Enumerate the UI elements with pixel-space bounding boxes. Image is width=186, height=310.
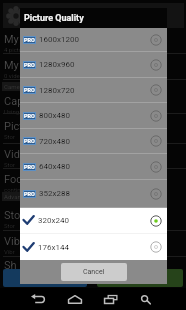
staticText: 176x144: [38, 243, 69, 252]
button[interactable]: Storage: [4, 209, 186, 229]
staticText: Using camera: [4, 108, 41, 115]
staticText: Video quality: [4, 148, 68, 161]
button[interactable]: Home: [57, 288, 93, 310]
button[interactable]: Search: [128, 288, 164, 310]
staticText: Cancel: [83, 268, 105, 276]
button[interactable]: Record: [97, 269, 183, 287]
staticText: 1280x960: [39, 60, 75, 69]
staticText: 800x480: [39, 111, 70, 120]
staticText: 1600x1200: [39, 35, 79, 44]
staticText: Camera: [4, 83, 25, 90]
staticText: Storage: [4, 209, 42, 222]
button[interactable]: 176x144: [20, 234, 167, 260]
button[interactable]: PRO: [20, 180, 167, 208]
button[interactable]: Cancel: [61, 263, 127, 281]
button[interactable]: Capture mode: [4, 95, 186, 115]
button[interactable]: Back: [20, 288, 56, 310]
staticText: 320x240: [38, 216, 69, 225]
button[interactable]: PRO: [20, 78, 167, 103]
staticText: Vibr: [4, 248, 15, 255]
staticText: My pictures: [4, 33, 61, 46]
staticText: PRO: [24, 87, 35, 93]
staticText: 720x480: [39, 137, 70, 146]
staticText: PRO: [24, 138, 35, 144]
button[interactable]: PRO: [20, 154, 167, 180]
button[interactable]: Focus mode: [4, 173, 186, 193]
staticText: PRO: [24, 164, 35, 170]
staticText: Stor: [4, 133, 15, 140]
staticText: PRO: [24, 62, 35, 68]
button[interactable]: 320x240: [20, 208, 167, 234]
staticText: Capture mode: [4, 95, 74, 108]
button[interactable]: Vibrate: [4, 235, 186, 255]
staticText: PRO: [24, 191, 35, 197]
staticText: Vibrate: [4, 235, 39, 248]
staticText: My videos: [4, 59, 54, 72]
staticText: 352x288: [39, 189, 70, 198]
staticText: PRO: [24, 37, 35, 43]
staticText: 1280x720: [39, 86, 75, 95]
staticText: 640x480: [39, 162, 70, 171]
staticText: Picture quality: [4, 120, 74, 133]
staticText: continuous: [4, 186, 34, 193]
staticText: Focus mode: [4, 173, 65, 186]
button[interactable]: PRO: [20, 129, 167, 154]
button[interactable]: PRO: [20, 52, 167, 78]
button[interactable]: My pictures: [4, 33, 186, 53]
staticText: Advanced: [4, 193, 31, 200]
staticText: Sh: [4, 259, 17, 272]
staticText: PRO: [24, 113, 35, 119]
button[interactable]: Share: [3, 269, 87, 287]
staticText: Stor: [4, 161, 15, 168]
staticText: 0 videos: [4, 72, 27, 79]
button[interactable]: PRO: [20, 103, 167, 129]
button[interactable]: My videos: [4, 59, 186, 79]
button[interactable]: PRO: [20, 28, 167, 52]
button[interactable]: Picture quality: [4, 120, 186, 140]
staticText: 4 pictures: [4, 46, 31, 53]
button[interactable]: Recents: [93, 288, 129, 310]
button[interactable]: Video quality: [4, 148, 186, 168]
staticText: Picture Quality: [24, 13, 84, 24]
staticText: Stor: [4, 222, 15, 229]
